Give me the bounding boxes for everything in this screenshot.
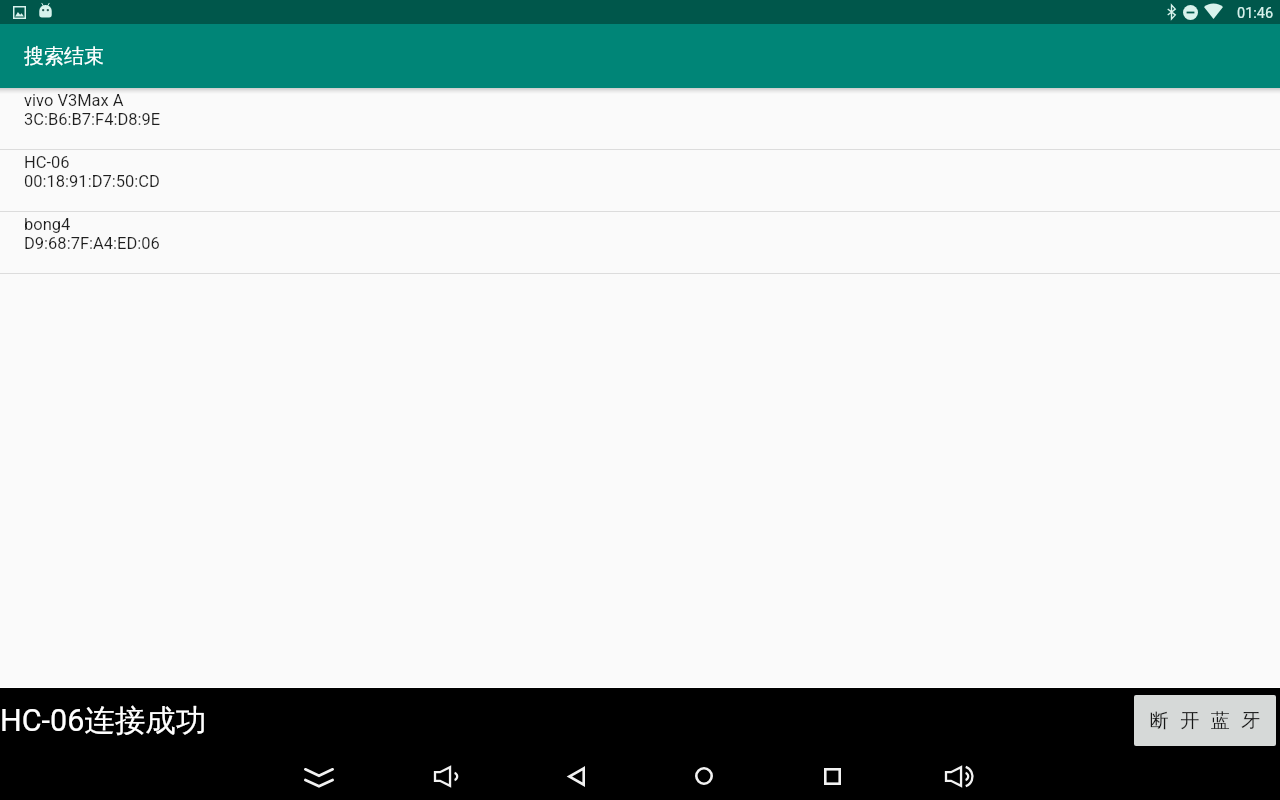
button[interactable]: Volume up [935,752,983,800]
staticText: bong4 [24,215,71,234]
button[interactable]: HC-06 [0,150,1280,211]
button[interactable]: 断开蓝牙 [1134,695,1276,746]
button[interactable]: bong4 [0,212,1280,273]
staticText: 断开蓝牙 [1144,709,1266,733]
staticText: 01:46 [1237,5,1274,22]
button[interactable]: vivo V3Max A [0,88,1280,149]
staticText: HC-06 [24,153,70,172]
button[interactable]: Volume down [422,752,470,800]
button[interactable]: Home [680,752,728,800]
button[interactable]: Recent apps [808,752,856,800]
staticText: vivo V3Max A [24,91,124,110]
staticText: HC-06连接成功 [0,702,207,740]
button[interactable]: Back [552,752,600,800]
button[interactable]: Hide navigation bar [295,752,343,800]
staticText: 搜索结束 [24,44,104,69]
staticText: 00:18:91:D7:50:CD [24,172,160,191]
staticText: D9:68:7F:A4:ED:06 [24,234,160,253]
staticText: 3C:B6:B7:F4:D8:9E [24,110,161,129]
